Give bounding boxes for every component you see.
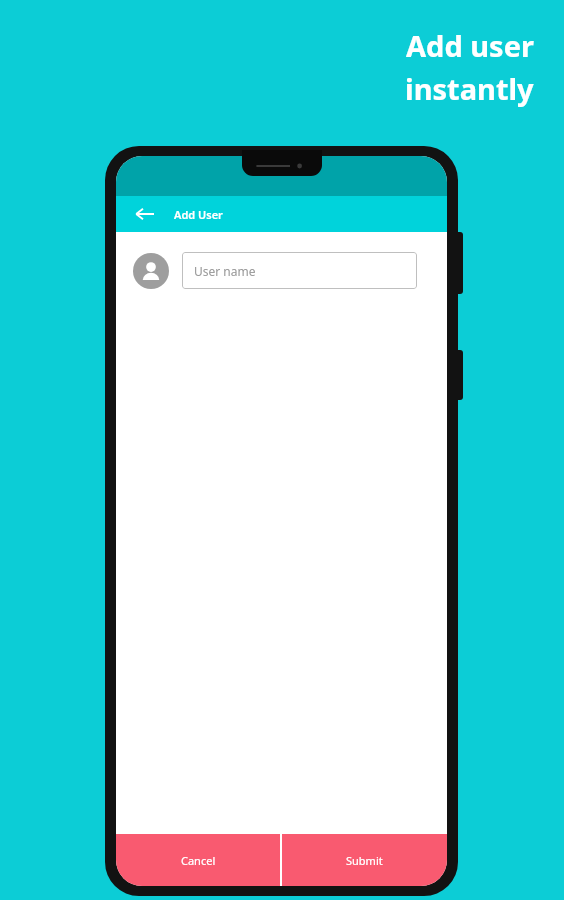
button[interactable]: Cancel (116, 834, 280, 886)
staticText: instantly (405, 69, 534, 108)
staticText: Add user (406, 26, 534, 65)
button[interactable]: Submit (282, 834, 447, 886)
staticText: User name (194, 263, 256, 279)
button[interactable]: Back (132, 201, 158, 227)
staticText: Cancel (181, 853, 216, 868)
staticText: Add User (174, 207, 223, 222)
button[interactable]: User name (182, 252, 417, 289)
staticText: Submit (346, 853, 383, 868)
